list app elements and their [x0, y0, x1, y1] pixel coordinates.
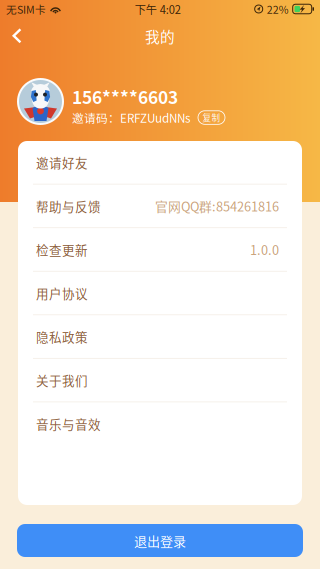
button[interactable]: 用户协议: [18, 272, 302, 314]
button[interactable]: 隐私政策: [18, 315, 302, 358]
staticText: 156****6603: [72, 84, 178, 109]
staticText: 我的: [145, 25, 175, 47]
staticText: 22%: [267, 1, 289, 17]
button[interactable]: Back: [0, 22, 34, 50]
staticText: 邀请码：ERFZUudNNs: [72, 109, 190, 126]
staticText: 关于我们: [36, 371, 88, 389]
staticText: 邀请好友: [36, 153, 88, 171]
staticText: 隐私政策: [36, 327, 88, 346]
button[interactable]: 邀请好友: [18, 141, 302, 184]
staticText: 帮助与反馈: [36, 197, 101, 215]
staticText: 下午 4:02: [135, 1, 181, 17]
button[interactable]: 退出登录: [17, 524, 303, 557]
staticText: 音乐与音效: [36, 415, 101, 433]
staticText: 检查更新: [36, 240, 88, 258]
button[interactable]: 检查更新: [18, 228, 302, 271]
button[interactable]: 关于我们: [18, 359, 302, 402]
staticText: 1.0.0: [250, 240, 279, 259]
staticText: 官网QQ群:854261816: [155, 197, 279, 215]
staticText: 退出登录: [134, 531, 186, 550]
button[interactable]: 复制: [198, 111, 225, 124]
staticText: 用户协议: [36, 284, 88, 302]
staticText: 复制: [202, 111, 220, 124]
staticText: 无SIM卡: [6, 1, 46, 17]
button[interactable]: 帮助与反馈: [18, 185, 302, 227]
button[interactable]: 音乐与音效: [18, 402, 302, 445]
